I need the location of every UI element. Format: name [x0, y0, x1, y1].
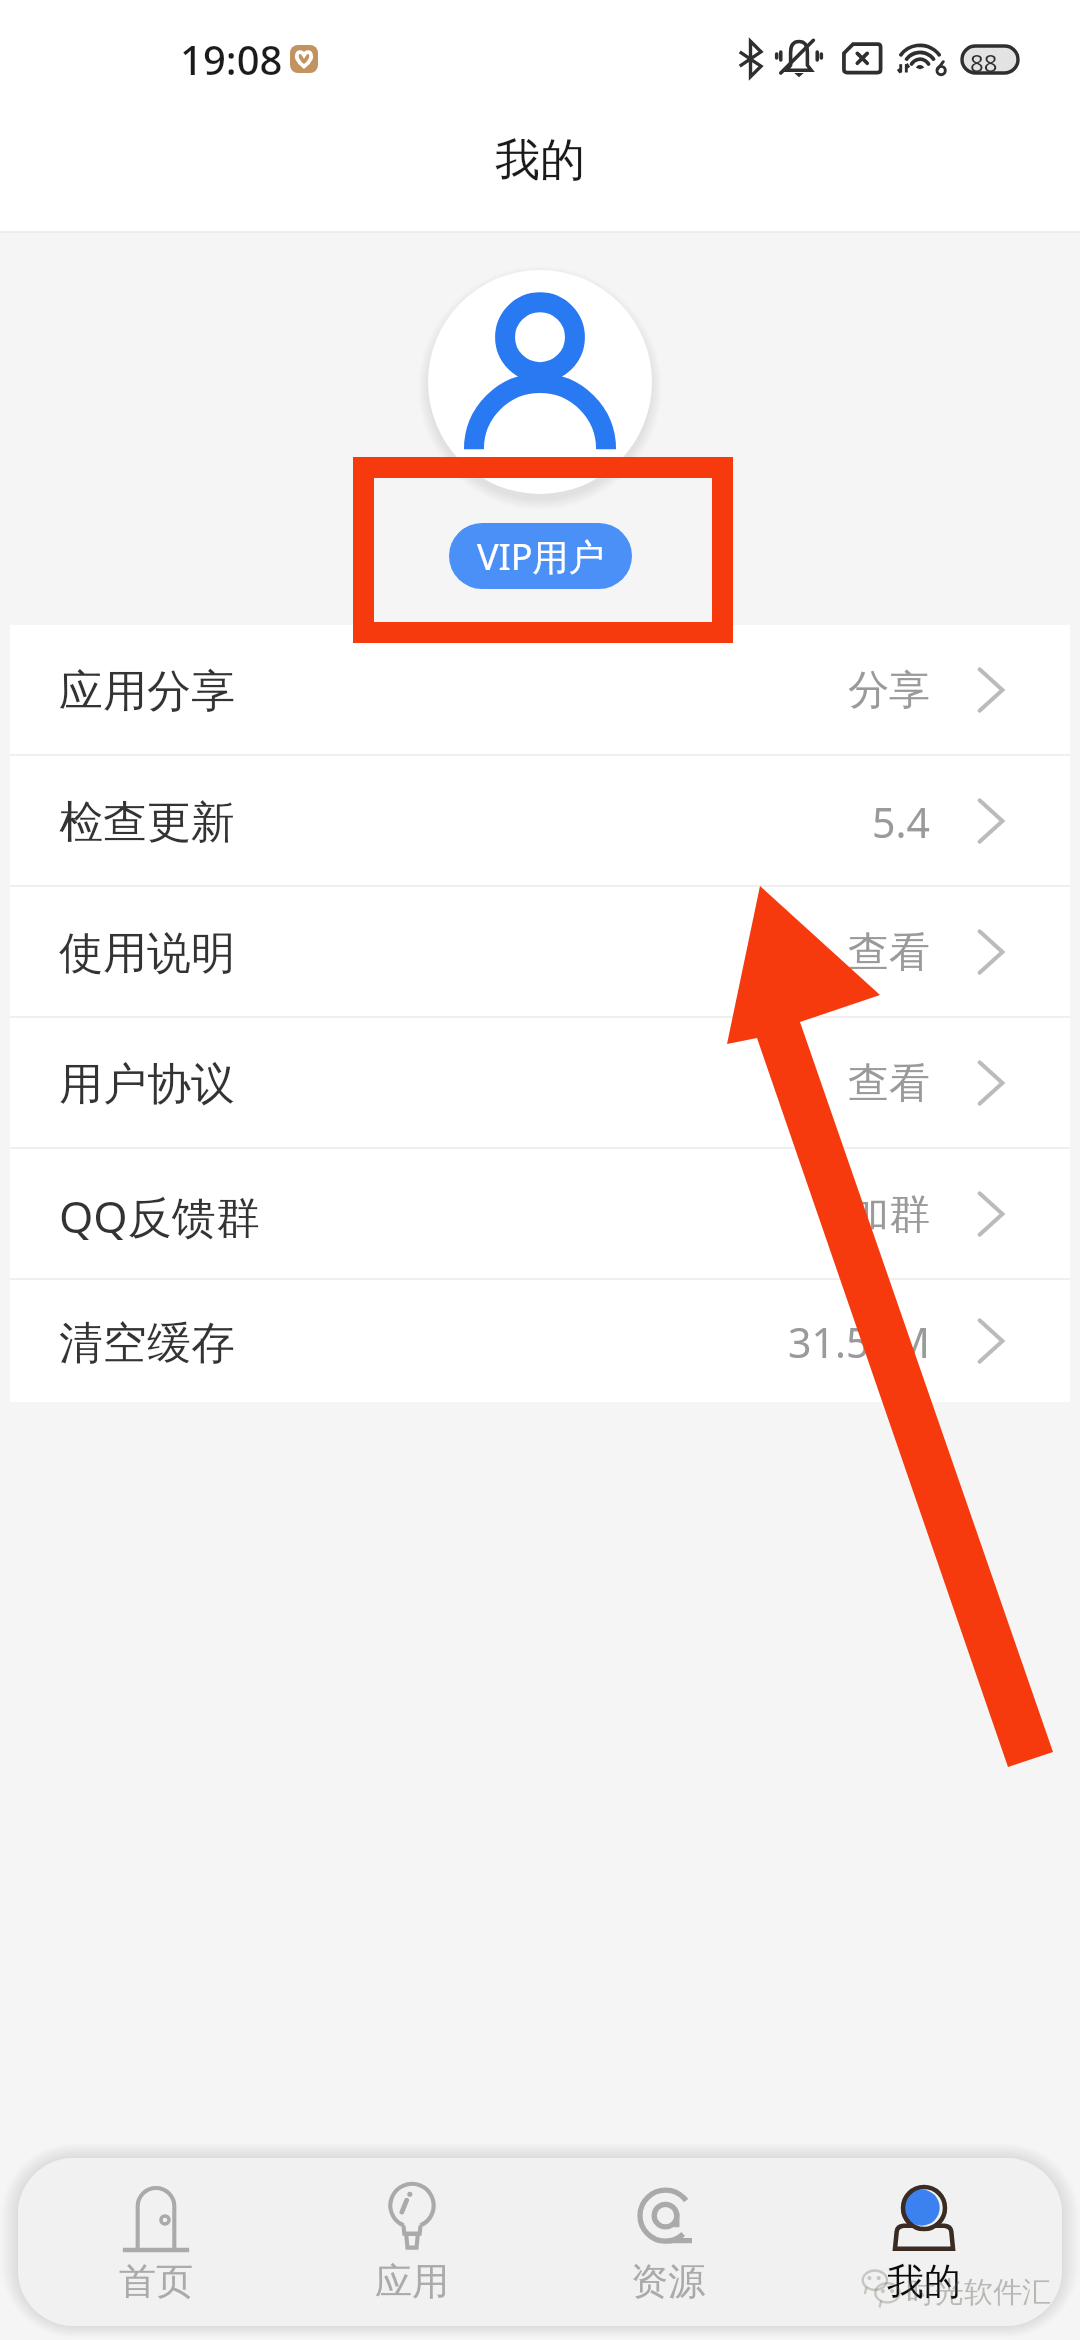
staticText: 分享	[848, 665, 930, 717]
staticText: 我的	[495, 132, 585, 189]
staticText: 31.53M	[788, 1314, 930, 1370]
button[interactable]: 资源	[550, 2158, 786, 2326]
button[interactable]: 首页	[38, 2158, 274, 2326]
button[interactable]: VIP用户	[449, 523, 632, 589]
staticText: 时光软件汇	[906, 2274, 1051, 2311]
staticText: 资源	[631, 2258, 705, 2305]
staticText: 19:08	[180, 32, 283, 86]
button[interactable]: Avatar	[428, 270, 652, 494]
staticText: 查看	[848, 927, 930, 979]
button[interactable]: 检查更新	[10, 756, 1070, 885]
button[interactable]: 我的	[806, 2158, 1042, 2326]
staticText: 检查更新	[59, 795, 235, 850]
staticText: 加群	[848, 1189, 930, 1241]
button[interactable]: 用户协议	[10, 1018, 1070, 1147]
staticText: 我的	[887, 2258, 961, 2305]
staticText: 88	[970, 46, 998, 73]
button[interactable]: QQ反馈群	[10, 1149, 1070, 1278]
staticText: 5.4	[872, 794, 930, 850]
staticText: 用户协议	[59, 1057, 235, 1112]
button[interactable]: 清空缓存	[10, 1280, 1070, 1402]
button[interactable]: 应用分享	[10, 625, 1070, 754]
staticText: 查看	[848, 1058, 930, 1110]
staticText: 首页	[119, 2258, 193, 2305]
staticText: 清空缓存	[59, 1316, 235, 1371]
staticText: 使用说明	[59, 926, 235, 981]
button[interactable]: 使用说明	[10, 887, 1070, 1016]
button[interactable]: 应用	[294, 2158, 530, 2326]
staticText: 应用分享	[59, 664, 235, 719]
staticText: 应用	[375, 2258, 449, 2305]
staticText: QQ反馈群	[59, 1186, 260, 1246]
staticText: VIP用户	[477, 532, 605, 581]
